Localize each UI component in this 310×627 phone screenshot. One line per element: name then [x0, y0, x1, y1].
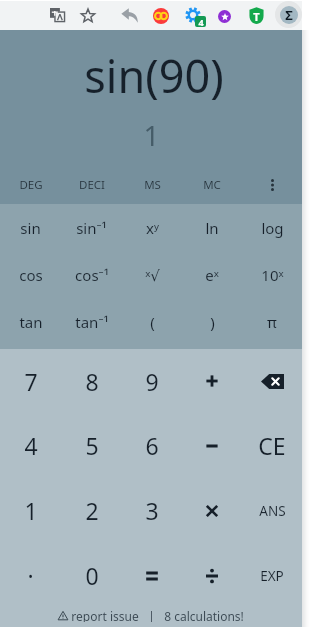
staticText: cos [19, 265, 43, 285]
staticText: T [253, 9, 260, 24]
button[interactable]: CE [242, 413, 302, 478]
button[interactable]: 4 [0, 413, 61, 478]
button[interactable]: cos [0, 251, 61, 298]
staticText: MC [203, 177, 221, 193]
button[interactable]: Multiply [182, 478, 242, 543]
staticText: Σ [285, 6, 293, 24]
staticText: π [267, 312, 277, 332]
button[interactable]: 7 [0, 349, 61, 413]
button[interactable]: ˣ√ [122, 251, 182, 298]
button[interactable]: 9 [122, 349, 182, 413]
staticText: cos⁻¹ [75, 265, 109, 285]
staticText: EXP [260, 567, 284, 585]
button[interactable]: 8 [61, 349, 122, 413]
button[interactable]: Plus [182, 349, 242, 413]
button[interactable]: sin [0, 204, 61, 251]
staticText: 4 [198, 16, 204, 27]
staticText: · [27, 560, 34, 591]
staticText: sin⁻¹ [76, 218, 107, 238]
button[interactable]: · [0, 543, 61, 608]
button[interactable]: Extension [153, 8, 169, 24]
button[interactable]: log [242, 204, 302, 251]
button[interactable]: Minus [182, 413, 242, 478]
button[interactable]: report issue [58, 608, 139, 622]
staticText: ln [205, 218, 219, 238]
button[interactable]: Calculator [275, 1, 302, 28]
button[interactable]: 2 [61, 478, 122, 543]
staticText: log [261, 218, 284, 238]
staticText: 2 [85, 495, 99, 526]
button[interactable]: 5 [61, 413, 122, 478]
staticText: MS [144, 177, 161, 193]
staticText: report issue [71, 608, 139, 622]
button[interactable]: ( [122, 298, 182, 345]
button[interactable]: 3 [122, 478, 182, 543]
staticText: 3 [145, 495, 159, 526]
staticText: CE [258, 430, 286, 461]
button[interactable]: Backspace [242, 349, 302, 413]
button[interactable]: Translate [50, 8, 65, 22]
staticText: ) [210, 312, 215, 332]
button[interactable]: Back [121, 8, 138, 23]
staticText: ( [150, 312, 155, 332]
button[interactable]: ANS [242, 478, 302, 543]
button[interactable]: 0 [61, 543, 122, 608]
staticText: | [148, 608, 155, 622]
button[interactable]: ) [182, 298, 242, 345]
button[interactable]: Equals [122, 543, 182, 608]
staticText: xʸ [146, 218, 159, 238]
staticText: sin(90) [84, 45, 224, 106]
button[interactable]: EXP [242, 543, 302, 608]
staticText: 1 [24, 495, 38, 526]
button[interactable]: DEG [0, 171, 61, 199]
button[interactable]: DECI [61, 171, 122, 199]
button[interactable]: Shield [249, 7, 264, 24]
button[interactable]: tan [0, 298, 61, 345]
staticText: 8 [85, 366, 99, 397]
button[interactable]: More options [242, 171, 302, 199]
staticText: 4 [24, 430, 38, 461]
staticText: ANS [259, 502, 286, 520]
staticText: sin [20, 218, 41, 238]
button[interactable]: MS [122, 171, 182, 199]
button[interactable]: Settings [185, 7, 201, 23]
button[interactable]: Bookmark [81, 9, 95, 23]
button[interactable]: Extension star [218, 10, 231, 23]
staticText: 7 [24, 366, 38, 397]
staticText: eˣ [205, 265, 219, 285]
staticText: DECI [79, 177, 105, 193]
button[interactable]: cos⁻¹ [61, 251, 122, 298]
button[interactable]: eˣ [182, 251, 242, 298]
staticText: DEG [19, 177, 43, 193]
button[interactable]: 6 [122, 413, 182, 478]
button[interactable]: xʸ [122, 204, 182, 251]
staticText: 9 [145, 366, 159, 397]
staticText: 10ˣ [261, 265, 284, 285]
staticText: 0 [85, 560, 99, 591]
staticText: tan [19, 312, 43, 332]
staticText: 6 [145, 430, 159, 461]
button[interactable]: Divide [182, 543, 242, 608]
button[interactable]: sin⁻¹ [61, 204, 122, 251]
staticText: tan⁻¹ [75, 312, 109, 332]
button[interactable]: 1 [0, 478, 61, 543]
staticText: 1 [143, 116, 160, 150]
staticText: ˣ√ [145, 265, 160, 285]
button[interactable]: MC [182, 171, 242, 199]
button[interactable]: 10ˣ [242, 251, 302, 298]
staticText: 8 calculations! [164, 608, 244, 622]
button[interactable]: tan⁻¹ [61, 298, 122, 345]
staticText: 5 [85, 430, 99, 461]
button[interactable]: π [242, 298, 302, 345]
button[interactable]: ln [182, 204, 242, 251]
